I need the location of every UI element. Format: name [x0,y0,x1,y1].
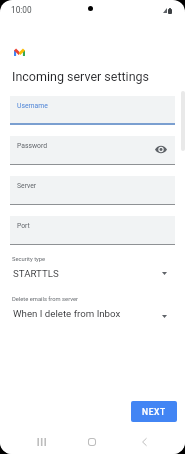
staticText: Security type [12,256,46,263]
button[interactable]: Recent apps [21,433,61,451]
staticText: Username [17,102,48,110]
staticText: 10:00 [11,5,32,15]
staticText: Delete emails from server [12,296,78,303]
staticText: NEXT [142,407,166,417]
button[interactable]: Back [124,433,164,451]
button[interactable]: Delete emails from server [0,293,185,325]
other: Show password [155,145,167,154]
button[interactable]: Security type [0,253,185,285]
button[interactable]: Password [10,136,175,165]
staticText: Server [17,182,37,190]
button[interactable]: Server [10,176,175,205]
staticText: Incoming server settings [12,69,150,84]
staticText: STARTTLS [13,268,59,279]
button[interactable]: Home [72,433,112,451]
other: Expand [162,272,167,275]
staticText: When I delete from Inbox [13,308,121,319]
button[interactable]: NEXT [131,401,177,422]
staticText: Port [17,222,30,230]
staticText: Password [17,142,48,150]
other: Expand [162,315,167,318]
button[interactable]: Username [10,96,175,125]
button[interactable]: Port [10,216,175,245]
